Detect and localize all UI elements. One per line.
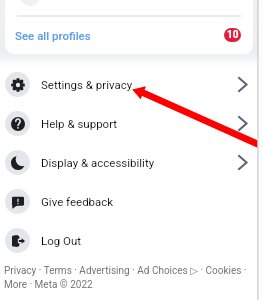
staticText: More · Meta © 2022 bbox=[4, 279, 93, 291]
button[interactable]: See all profiles bbox=[5, 23, 253, 47]
staticText: 10 bbox=[227, 29, 239, 41]
staticText: Log Out bbox=[41, 234, 82, 247]
button[interactable]: Log Out bbox=[0, 221, 263, 260]
staticText: Display & accessibility bbox=[41, 156, 155, 169]
staticText: Privacy · Terms · Advertising · Ad Choic… bbox=[4, 265, 247, 277]
staticText: Settings & privacy bbox=[41, 78, 133, 91]
button[interactable]: Help & support bbox=[0, 104, 263, 143]
button[interactable]: Settings & privacy bbox=[0, 65, 263, 104]
button[interactable]: Give feedback bbox=[0, 182, 263, 221]
staticText: Give feedback bbox=[41, 195, 114, 208]
staticText: Help & support bbox=[41, 117, 118, 130]
staticText: See all profiles bbox=[15, 29, 91, 42]
button[interactable]: Display & accessibility bbox=[0, 143, 263, 182]
